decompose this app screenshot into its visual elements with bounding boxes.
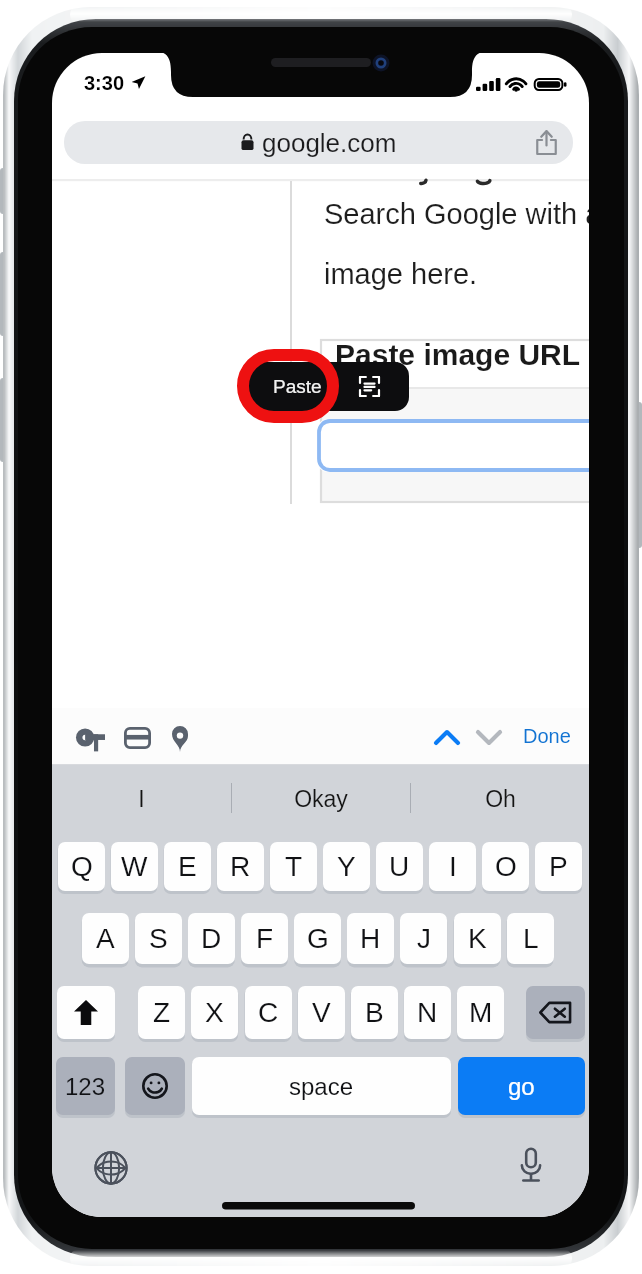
button[interactable]: Previous field	[435, 730, 459, 745]
staticText: T	[285, 851, 303, 882]
staticText: B	[365, 997, 384, 1028]
staticText: R	[230, 851, 251, 882]
staticText: M	[469, 997, 493, 1028]
button[interactable]: W	[111, 842, 158, 891]
button[interactable]: Y	[323, 842, 370, 891]
staticText: go	[508, 1073, 535, 1100]
button[interactable]: D	[188, 913, 235, 964]
staticText: F	[256, 923, 274, 954]
button[interactable]: F	[241, 913, 288, 964]
staticText: D	[201, 923, 222, 954]
button[interactable]: Change keyboard	[94, 1151, 128, 1185]
staticText: Search Google with a	[324, 198, 589, 230]
button[interactable]: Passwords	[76, 728, 105, 747]
button[interactable]: space	[192, 1057, 451, 1115]
staticText: W	[121, 851, 148, 882]
button[interactable]: G	[294, 913, 341, 964]
staticText: P	[549, 851, 568, 882]
staticText: N	[417, 997, 438, 1028]
button[interactable]	[317, 419, 589, 472]
button[interactable]: Shift	[57, 986, 115, 1039]
button[interactable]: V	[298, 986, 345, 1039]
staticText: image here.	[324, 258, 478, 290]
button[interactable]: Credit card	[124, 727, 151, 749]
button[interactable]: Backspace	[526, 986, 585, 1039]
button[interactable]: go	[458, 1057, 585, 1115]
button[interactable]: Z	[138, 986, 185, 1039]
button[interactable]: N	[404, 986, 451, 1039]
staticText: google.com	[262, 128, 397, 157]
button[interactable]: Scan text	[359, 376, 380, 397]
button[interactable]: Okay	[232, 766, 410, 831]
button[interactable]: Q	[58, 842, 105, 891]
staticText: C	[258, 997, 279, 1028]
button[interactable]: I	[429, 842, 476, 891]
staticText: space	[289, 1073, 354, 1100]
staticText: S	[149, 923, 168, 954]
button[interactable]: H	[347, 913, 394, 964]
staticText: I	[138, 786, 145, 812]
staticText: Paste	[273, 376, 322, 397]
button[interactable]: Paste	[247, 362, 347, 411]
button[interactable]: L	[507, 913, 554, 964]
button[interactable]: X	[191, 986, 238, 1039]
button[interactable]: Done	[523, 725, 571, 747]
button[interactable]: google.com	[64, 121, 573, 164]
staticText: 123	[65, 1073, 106, 1100]
staticText: A	[96, 923, 115, 954]
button[interactable]: J	[400, 913, 447, 964]
button[interactable]: Share	[536, 130, 557, 155]
staticText: Okay	[294, 786, 348, 812]
button[interactable]: Next field	[477, 730, 501, 745]
button[interactable]: A	[82, 913, 129, 964]
staticText: G	[307, 923, 329, 954]
button[interactable]: Emoji	[125, 1057, 185, 1115]
button[interactable]: T	[270, 842, 317, 891]
staticText: H	[360, 923, 381, 954]
staticText: Done	[523, 725, 571, 747]
staticText: Oh	[485, 786, 516, 812]
staticText: J	[417, 923, 431, 954]
staticText: O	[495, 851, 517, 882]
button[interactable]: 123	[56, 1057, 115, 1115]
button[interactable]: U	[376, 842, 423, 891]
staticText: I	[449, 851, 457, 882]
staticText: Q	[71, 851, 93, 882]
button[interactable]: Dictate	[519, 1148, 543, 1185]
staticText: U	[389, 851, 410, 882]
button[interactable]: Oh	[411, 766, 589, 831]
button[interactable]: B	[351, 986, 398, 1039]
button[interactable]: M	[457, 986, 504, 1039]
button[interactable]: S	[135, 913, 182, 964]
button[interactable]: I	[52, 766, 231, 831]
button[interactable]: Location	[172, 726, 188, 752]
button[interactable]: O	[482, 842, 529, 891]
button[interactable]: R	[217, 842, 264, 891]
button[interactable]: K	[454, 913, 501, 964]
staticText: 3:30	[84, 72, 125, 94]
button[interactable]: P	[535, 842, 582, 891]
staticText: X	[205, 997, 224, 1028]
staticText: Paste image URL	[335, 338, 581, 372]
button[interactable]: C	[245, 986, 292, 1039]
button[interactable]: E	[164, 842, 211, 891]
staticText: K	[468, 923, 487, 954]
staticText: Y	[337, 851, 356, 882]
staticText: L	[523, 923, 539, 954]
staticText: E	[178, 851, 197, 882]
staticText: Z	[153, 997, 171, 1028]
staticText: V	[312, 997, 331, 1028]
